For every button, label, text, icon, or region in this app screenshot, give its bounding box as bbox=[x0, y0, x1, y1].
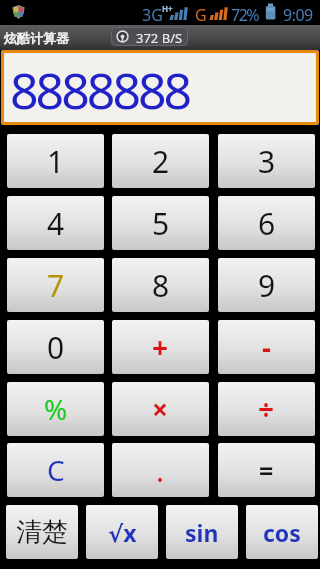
button[interactable]: 2 bbox=[112, 134, 209, 188]
staticText: 4 bbox=[47, 203, 65, 244]
staticText: 3G bbox=[142, 4, 163, 26]
button[interactable]: % bbox=[7, 382, 104, 436]
button[interactable]: 5 bbox=[112, 196, 209, 250]
staticText: 72% bbox=[231, 4, 259, 26]
staticText: 3 bbox=[258, 141, 276, 182]
staticText: sin bbox=[185, 517, 219, 548]
button[interactable]: 8888888 bbox=[1, 50, 319, 125]
button[interactable]: sin bbox=[166, 505, 238, 559]
staticText: 6 bbox=[258, 203, 276, 244]
button[interactable]: 3 bbox=[218, 134, 315, 188]
staticText: 372 B/S bbox=[136, 29, 183, 46]
staticText: G bbox=[195, 4, 207, 26]
button[interactable]: 4 bbox=[7, 196, 104, 250]
button[interactable]: 372 B/S bbox=[111, 27, 188, 46]
staticText: 0 bbox=[47, 327, 65, 368]
button[interactable]: cos bbox=[246, 505, 318, 559]
staticText: 8888888 bbox=[10, 56, 190, 124]
staticText: ÷ bbox=[258, 390, 275, 428]
button[interactable]: 1 bbox=[7, 134, 104, 188]
staticText: . bbox=[156, 450, 165, 491]
staticText: 清楚 bbox=[16, 516, 68, 549]
button[interactable]: × bbox=[112, 382, 209, 436]
staticText: 8 bbox=[152, 265, 170, 306]
button[interactable]: ÷ bbox=[218, 382, 315, 436]
button[interactable]: √x bbox=[86, 505, 158, 559]
button[interactable]: 0 bbox=[7, 320, 104, 374]
staticText: √x bbox=[108, 517, 137, 548]
button[interactable]: 8 bbox=[112, 258, 209, 312]
button[interactable]: . bbox=[112, 443, 209, 497]
staticText: 5 bbox=[152, 203, 170, 244]
staticText: 7 bbox=[47, 265, 65, 306]
staticText: cos bbox=[263, 517, 301, 548]
button[interactable]: C bbox=[7, 443, 104, 497]
button[interactable]: 7 bbox=[7, 258, 104, 312]
staticText: + bbox=[152, 328, 169, 366]
button[interactable]: 清楚 bbox=[6, 505, 78, 559]
staticText: H+ bbox=[162, 3, 173, 14]
staticText: 炫酷计算器 bbox=[4, 30, 69, 46]
button[interactable]: + bbox=[112, 320, 209, 374]
button[interactable]: 9 bbox=[218, 258, 315, 312]
staticText: 2 bbox=[152, 141, 170, 182]
staticText: C bbox=[47, 451, 65, 489]
staticText: × bbox=[152, 390, 169, 428]
button[interactable]: 6 bbox=[218, 196, 315, 250]
staticText: 1 bbox=[47, 141, 65, 182]
button[interactable]: = bbox=[218, 443, 315, 497]
staticText: 9:09 bbox=[283, 4, 313, 26]
staticText: 9 bbox=[258, 265, 276, 306]
staticText: - bbox=[262, 328, 271, 366]
staticText: = bbox=[259, 453, 274, 487]
staticText: % bbox=[44, 390, 68, 428]
button[interactable]: - bbox=[218, 320, 315, 374]
